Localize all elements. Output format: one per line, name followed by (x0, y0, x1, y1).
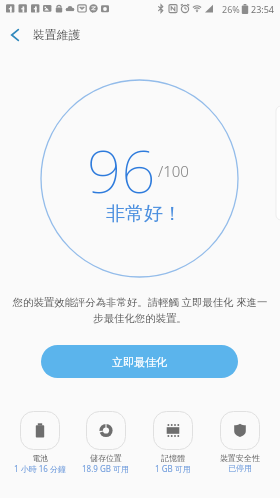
staticText: 已停用 (228, 463, 252, 473)
staticText: 23:54 (251, 3, 275, 15)
staticText: 裝置維護 (33, 28, 81, 43)
button[interactable]: 儲存位置 (73, 411, 139, 474)
staticText: 1 GB 可用 (155, 463, 191, 474)
staticText: 您的裝置效能評分為非常好。請輕觸 立即最佳化 來進一步最佳化您的裝置。 (11, 295, 269, 325)
staticText: 1 小時 16 分鐘 (14, 463, 66, 474)
button[interactable]: 立即最佳化 (41, 345, 238, 378)
staticText: 18.9 GB 可用 (82, 463, 130, 474)
staticText: 裝置安全性 (220, 453, 260, 463)
button[interactable]: 電池 (7, 411, 73, 474)
staticText: 26% (222, 3, 240, 15)
button[interactable]: 記憶體 (139, 411, 206, 474)
staticText: 記憶體 (161, 453, 185, 463)
staticText: 立即最佳化 (112, 355, 167, 369)
staticText: 非常好！ (106, 202, 182, 226)
staticText: 儲存位置 (90, 453, 122, 463)
staticText: /100 (158, 161, 189, 181)
button[interactable]: Back (0, 18, 31, 50)
button[interactable]: 裝置安全性 (206, 411, 273, 473)
staticText: 電池 (32, 453, 48, 463)
staticText: 96 (87, 129, 156, 211)
